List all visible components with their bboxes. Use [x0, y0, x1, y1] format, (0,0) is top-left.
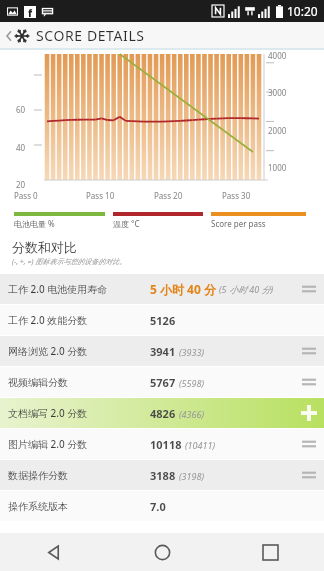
- staticText: 图片编辑 2.0 分数: [8, 437, 150, 451]
- staticText: 分数和对比: [12, 239, 77, 255]
- staticText: 4826: [150, 406, 176, 421]
- staticText: 5 小时 40 分: [150, 281, 216, 297]
- staticText: 视频编辑分数: [8, 376, 150, 389]
- staticText: 网络浏览 2.0 分数: [8, 344, 150, 358]
- button[interactable]: 文档编写 2.0 分数: [0, 398, 324, 428]
- staticText: Pass 0: [14, 190, 38, 201]
- staticText: (5 小时 40 分): [219, 283, 274, 295]
- staticText: Score per pass: [211, 218, 266, 229]
- staticText: SCORE DETAILS: [36, 26, 145, 45]
- staticText: (10411): [185, 439, 216, 451]
- button[interactable]: 视频编辑分数: [0, 367, 324, 397]
- staticText: Pass 30: [222, 190, 251, 201]
- staticText: (4366): [179, 408, 205, 420]
- staticText: f: [28, 6, 33, 18]
- staticText: (3198): [179, 470, 205, 482]
- staticText: Pass 20: [154, 190, 183, 201]
- staticText: 3188: [150, 468, 176, 483]
- button[interactable]: 图片编辑 2.0 分数: [0, 429, 324, 459]
- staticText: (5598): [179, 377, 205, 389]
- staticText: 文档编写 2.0 分数: [8, 406, 150, 420]
- staticText: 温度 °C: [113, 218, 140, 229]
- staticText: 10:20: [287, 3, 318, 19]
- button[interactable]: 操作系统版本: [0, 491, 324, 521]
- staticText: 工作 2.0 电池使用寿命: [8, 282, 150, 296]
- staticText: 操作系统版本: [8, 500, 150, 513]
- staticText: 60: [16, 104, 26, 115]
- staticText: 3000: [268, 87, 287, 98]
- staticText: 5767: [150, 375, 176, 390]
- staticText: (3933): [179, 346, 205, 358]
- staticText: 40: [16, 142, 26, 153]
- staticText: 10118: [150, 437, 182, 452]
- button[interactable]: 工作 2.0 电池使用寿命: [0, 274, 324, 304]
- button[interactable]: Back: [0, 533, 108, 571]
- staticText: 4000: [268, 50, 287, 61]
- button[interactable]: 工作 2.0 效能分数: [0, 305, 324, 335]
- button[interactable]: Home: [108, 533, 216, 571]
- staticText: 1000: [268, 162, 287, 173]
- staticText: 工作 2.0 效能分数: [8, 313, 150, 327]
- staticText: 2000: [268, 125, 287, 136]
- staticText: 7.0: [150, 499, 166, 514]
- staticText: 电池电量 %: [14, 218, 55, 229]
- staticText: (-, +, =) 图标表示与您的设备的对比。: [12, 257, 127, 267]
- button[interactable]: 数据操作分数: [0, 460, 324, 490]
- staticText: 5126: [150, 313, 176, 328]
- staticText: 20: [16, 179, 26, 190]
- button[interactable]: Recent apps: [216, 533, 324, 571]
- staticText: 数据操作分数: [8, 469, 150, 482]
- staticText: Pass 10: [86, 190, 115, 201]
- staticText: 3941: [150, 344, 176, 359]
- button[interactable]: Back: [3, 26, 147, 45]
- button[interactable]: 网络浏览 2.0 分数: [0, 336, 324, 366]
